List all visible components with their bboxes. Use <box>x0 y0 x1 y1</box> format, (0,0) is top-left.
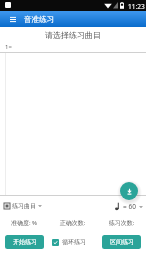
staticText: 正确次数: <box>48 219 97 227</box>
staticText: 区间练习 <box>110 238 134 246</box>
staticText: 练习曲目 <box>12 202 36 210</box>
staticText: 1= <box>5 43 12 51</box>
staticText: 音准练习 <box>24 15 54 24</box>
button[interactable]: 练习曲目 <box>4 202 42 210</box>
staticText: 准确度: % <box>0 219 48 227</box>
staticText: = 60 <box>123 202 136 211</box>
button[interactable]: = 60 <box>115 202 143 211</box>
button[interactable]: Menu <box>0 11 16 27</box>
staticText: 开始练习 <box>13 238 37 246</box>
staticText: 请选择练习曲目 <box>0 30 146 40</box>
button[interactable]: 循环练习 <box>52 235 86 249</box>
button[interactable]: 开始练习 <box>5 235 44 249</box>
button[interactable]: 区间练习 <box>102 235 141 249</box>
staticText: 11:23 <box>128 2 145 11</box>
staticText: 循环练习 <box>62 238 86 246</box>
staticText: 练习次数: <box>97 219 146 227</box>
button[interactable]: Download <box>120 182 138 200</box>
